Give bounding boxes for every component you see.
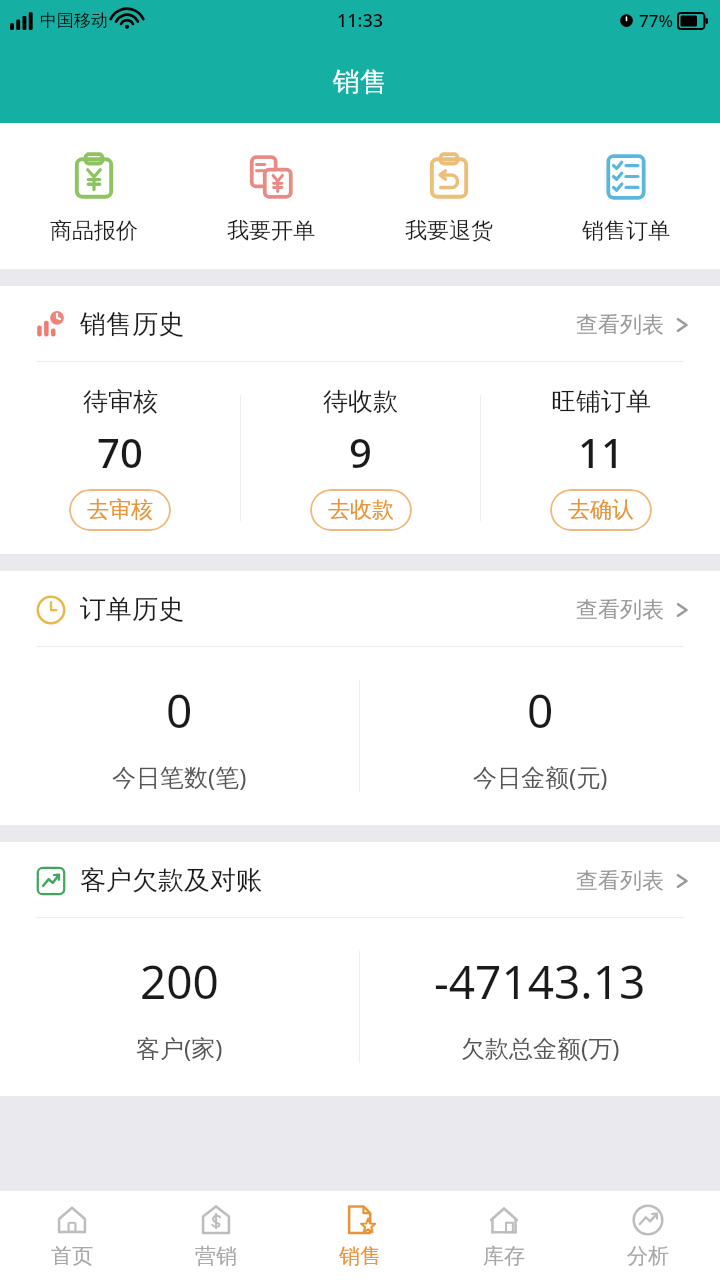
button[interactable]: 分析 bbox=[576, 1190, 720, 1281]
staticText: 客户欠款及对账 bbox=[80, 864, 262, 897]
staticText: 0 bbox=[166, 679, 193, 742]
staticText: 查看列表 bbox=[576, 867, 664, 895]
staticText: 首页 bbox=[51, 1243, 93, 1269]
staticText: 分析 bbox=[627, 1243, 669, 1269]
staticText: 营销 bbox=[195, 1243, 237, 1269]
staticText: 去收款 bbox=[328, 496, 394, 524]
staticText: 0 bbox=[527, 679, 554, 742]
staticText: -47143.13 bbox=[434, 950, 646, 1013]
staticText: 待审核 bbox=[83, 386, 158, 417]
staticText: 中国移动 bbox=[40, 10, 108, 31]
button[interactable]: 销售历史 bbox=[0, 286, 720, 361]
staticText: 销售历史 bbox=[80, 308, 184, 341]
other: 查看列表 bbox=[674, 869, 690, 893]
staticText: 今日金额(元) bbox=[473, 760, 608, 793]
staticText: 今日笔数(笔) bbox=[112, 760, 247, 793]
staticText: 销售 bbox=[333, 65, 387, 99]
staticText: 查看列表 bbox=[576, 596, 664, 624]
staticText: 待收款 bbox=[323, 386, 398, 417]
staticText: 70 bbox=[97, 425, 143, 479]
staticText: 200 bbox=[140, 950, 219, 1013]
button[interactable]: 0 bbox=[0, 679, 359, 793]
staticText: 欠款总金额(万) bbox=[461, 1031, 620, 1064]
other: 查看列表 bbox=[674, 313, 690, 337]
button[interactable]: 营销 bbox=[144, 1190, 288, 1281]
staticText: 去审核 bbox=[87, 496, 153, 524]
button[interactable]: 库存 bbox=[432, 1190, 576, 1281]
staticText: 11 bbox=[578, 425, 624, 479]
button[interactable]: 我要退货 bbox=[365, 149, 533, 247]
button[interactable]: 首页 bbox=[0, 1190, 144, 1281]
button[interactable]: 200 bbox=[0, 950, 359, 1064]
button[interactable]: -47143.13 bbox=[360, 950, 720, 1064]
staticText: 销售 bbox=[339, 1243, 381, 1269]
button[interactable]: 去确认 bbox=[550, 489, 652, 531]
staticText: 库存 bbox=[483, 1243, 525, 1269]
button[interactable]: 销售 bbox=[288, 1190, 432, 1281]
staticText: 销售订单 bbox=[582, 217, 670, 245]
staticText: 我要开单 bbox=[227, 217, 315, 245]
button[interactable]: 去收款 bbox=[310, 489, 412, 531]
button[interactable]: 0 bbox=[360, 679, 720, 793]
staticText: 我要退货 bbox=[405, 217, 493, 245]
other: 查看列表 bbox=[674, 598, 690, 622]
staticText: 去确认 bbox=[568, 496, 634, 524]
button[interactable]: 客户欠款及对账 bbox=[0, 842, 720, 917]
button[interactable]: 销售订单 bbox=[542, 149, 710, 247]
button[interactable]: 订单历史 bbox=[0, 571, 720, 646]
button[interactable]: 我要开单 bbox=[187, 149, 355, 247]
staticText: 客户(家) bbox=[136, 1031, 223, 1064]
staticText: 商品报价 bbox=[50, 217, 138, 245]
button[interactable]: 去审核 bbox=[69, 489, 171, 531]
staticText: 77% bbox=[639, 9, 673, 32]
button[interactable]: 商品报价 bbox=[10, 149, 178, 247]
staticText: 订单历史 bbox=[80, 593, 184, 626]
staticText: 查看列表 bbox=[576, 311, 664, 339]
staticText: 11:33 bbox=[337, 8, 384, 33]
staticText: 旺铺订单 bbox=[551, 386, 651, 417]
staticText: 9 bbox=[349, 425, 372, 479]
